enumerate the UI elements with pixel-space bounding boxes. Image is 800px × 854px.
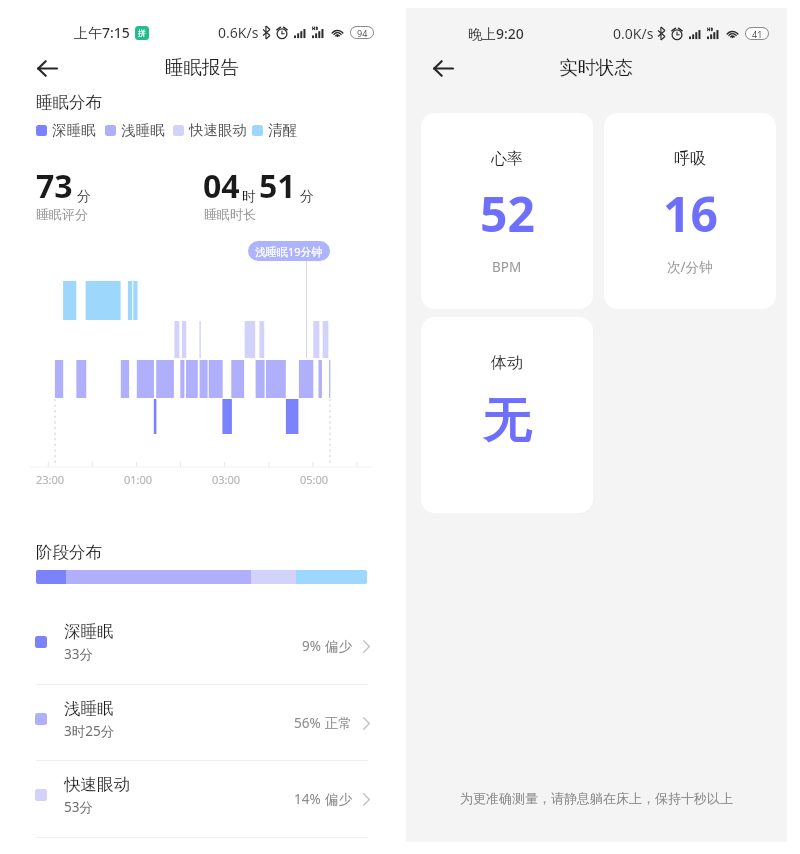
staticText: 04	[203, 164, 240, 208]
staticText: 94	[357, 27, 368, 38]
staticText: 清醒	[268, 121, 297, 139]
staticText: 睡眠报告	[165, 56, 239, 79]
staticText: 33分	[64, 645, 93, 663]
staticText: 晚上9:20	[468, 24, 524, 43]
staticText: 上午7:15	[74, 23, 130, 42]
staticText: 睡眠分布	[36, 92, 102, 113]
staticText: 深睡眠	[52, 121, 96, 139]
staticText: 睡眠时长	[204, 206, 256, 222]
staticText: 0.6K/s	[218, 23, 259, 42]
staticText: 心率	[491, 149, 523, 169]
staticText: 51	[259, 164, 296, 208]
staticText: 9%	[302, 637, 321, 655]
staticText: 浅睡眠	[121, 121, 165, 139]
staticText: 为更准确测量，请静息躺在床上，保持十秒以上	[406, 790, 787, 806]
staticText: 睡眠评分	[36, 206, 88, 222]
staticText: 01:00	[124, 472, 153, 487]
staticText: 16	[663, 181, 718, 246]
staticText: 次/分钟	[667, 258, 713, 276]
staticText: 浅睡眠	[64, 698, 114, 719]
staticText: 无	[483, 391, 531, 451]
staticText: 分	[300, 188, 314, 206]
staticText: 深睡眠	[64, 621, 114, 642]
staticText: 时	[242, 188, 256, 206]
staticText: 56%	[294, 714, 321, 732]
button[interactable]: 浅睡眠	[0, 684, 400, 761]
button[interactable]: Back	[430, 55, 456, 81]
button[interactable]: Back	[34, 55, 60, 81]
button[interactable]: 呼吸	[604, 113, 776, 309]
button[interactable]: 快速眼动	[0, 760, 400, 837]
staticText: 分	[77, 188, 91, 206]
staticText: 阶段分布	[36, 542, 102, 563]
staticText: 41	[752, 28, 763, 39]
staticText: 快速眼动	[189, 121, 247, 139]
staticText: 实时状态	[559, 56, 633, 79]
staticText: 呼吸	[674, 149, 706, 169]
staticText: 拼	[138, 28, 146, 38]
staticText: 03:00	[212, 472, 241, 487]
staticText: 73	[36, 164, 73, 208]
staticText: 体动	[491, 353, 523, 373]
staticText: 53分	[64, 798, 93, 816]
button[interactable]: 深睡眠	[0, 607, 400, 684]
staticText: 14%	[294, 790, 321, 808]
staticText: 偏少	[325, 791, 352, 808]
staticText: 52	[480, 181, 535, 246]
staticText: 偏少	[325, 638, 352, 655]
button[interactable]: 体动	[421, 317, 593, 513]
staticText: BPM	[492, 258, 522, 276]
staticText: 23:00	[36, 472, 65, 487]
staticText: 05:00	[300, 472, 329, 487]
staticText: 浅睡眠19分钟	[255, 244, 323, 259]
staticText: 快速眼动	[64, 774, 130, 795]
staticText: 0.0K/s	[613, 24, 654, 43]
staticText: 3时25分	[64, 722, 115, 740]
button[interactable]: 心率	[421, 113, 593, 309]
staticText: 正常	[325, 715, 352, 732]
